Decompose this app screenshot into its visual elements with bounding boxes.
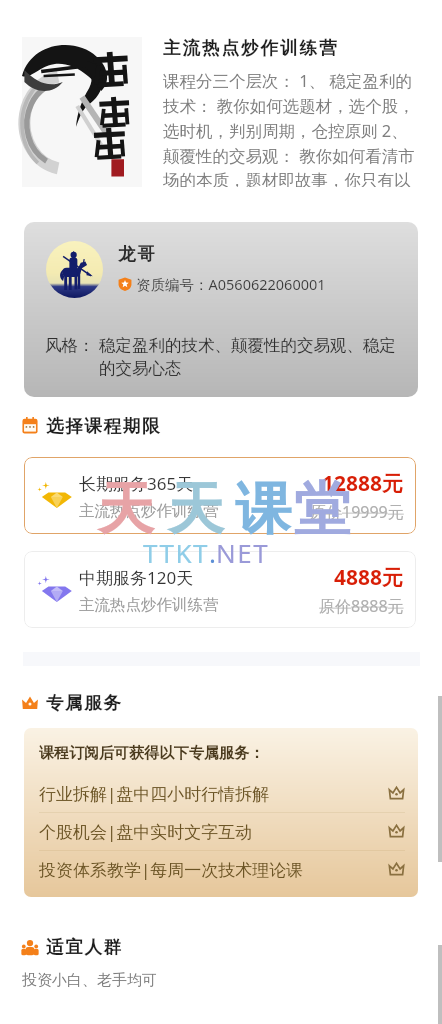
button[interactable]: 行业拆解|盘中四小时行情拆解 [39, 775, 405, 812]
staticText: 长期服务365天 [79, 472, 194, 495]
staticText: 投资体系教学|每周一次技术理论课 [39, 858, 388, 881]
staticText: 原价19999元 [310, 501, 404, 523]
staticText: 稳定盈利的技术、颠覆性的交易观、稳定的交易心态 [99, 335, 400, 379]
staticText: 12888元 [322, 469, 404, 498]
staticText: 投资小白、老手均可 [22, 971, 157, 990]
staticText: 选择课程期限 [46, 415, 162, 437]
staticText: . [209, 535, 216, 570]
staticText: 原价8888元 [319, 595, 404, 617]
staticText: 资质编号：A0560622060001 [136, 274, 326, 294]
staticText: 堂 [294, 474, 350, 545]
staticText: 龙哥 [118, 243, 157, 265]
staticText: 中期服务120天 [79, 566, 194, 589]
staticText: 课程订阅后可获得以下专属服务： [39, 744, 264, 763]
staticText: 天 [168, 474, 224, 545]
staticText: 4888元 [334, 563, 404, 592]
staticText: 个股机会|盘中实时文字互动 [39, 820, 388, 843]
staticText: 行业拆解|盘中四小时行情拆解 [39, 782, 388, 805]
staticText: 主流热点炒作训练营 [163, 37, 339, 59]
staticText: 主流热点炒作训练营 [79, 501, 219, 521]
button[interactable]: 长期服务365天 [24, 457, 416, 534]
staticText: 专属服务 [46, 692, 123, 714]
staticText: 适宜人群 [46, 936, 123, 958]
staticText: 主流热点炒作训练营 [79, 595, 219, 615]
other: 专属服务 [388, 823, 405, 840]
staticText: NET [216, 535, 270, 570]
button[interactable]: 个股机会|盘中实时文字互动 [39, 813, 405, 850]
button[interactable]: 投资体系教学|每周一次技术理论课 [39, 851, 405, 888]
staticText: 课程分三个层次： 1、 稳定盈利的技术： 教你如何选题材，选个股，选时机，判别周… [163, 69, 420, 187]
staticText: 风格： [45, 335, 95, 356]
staticText: 课 [235, 474, 291, 545]
button[interactable]: 龙哥 [24, 222, 418, 397]
staticText: TTKT [143, 535, 209, 570]
button[interactable]: 中期服务120天 [24, 551, 416, 628]
staticText: 天 [98, 474, 154, 545]
other: 专属服务 [388, 861, 405, 878]
other: 专属服务 [388, 785, 405, 802]
